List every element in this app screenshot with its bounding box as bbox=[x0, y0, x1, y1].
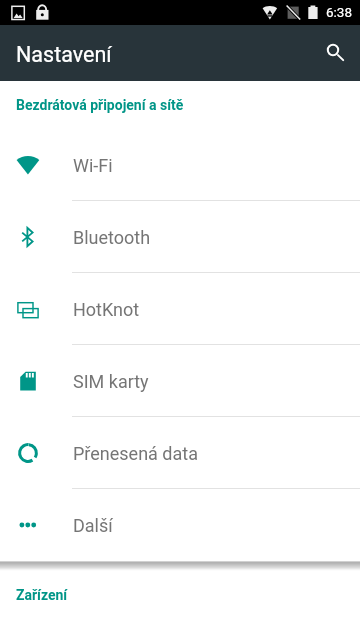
staticText: Přenesená data bbox=[73, 443, 198, 464]
staticText: Wi-Fi bbox=[73, 155, 113, 176]
staticText: Bezdrátová připojení a sítě bbox=[16, 97, 184, 113]
button[interactable]: HotKnot bbox=[0, 273, 360, 345]
staticText: HotKnot bbox=[73, 299, 140, 320]
button[interactable]: Přenesená data bbox=[0, 417, 360, 489]
staticText: 6:38 bbox=[326, 4, 353, 20]
button[interactable]: Další bbox=[0, 489, 360, 561]
button[interactable]: Bluetooth bbox=[0, 201, 360, 273]
staticText: Nastavení bbox=[16, 42, 112, 67]
staticText: Další bbox=[73, 515, 113, 536]
button[interactable]: Search bbox=[304, 25, 360, 81]
button[interactable]: Wi-Fi bbox=[0, 129, 360, 201]
staticText: SIM karty bbox=[73, 371, 149, 392]
staticText: Bluetooth bbox=[73, 227, 151, 248]
button[interactable]: SIM karty bbox=[0, 345, 360, 417]
staticText: Zařízení bbox=[16, 587, 68, 603]
